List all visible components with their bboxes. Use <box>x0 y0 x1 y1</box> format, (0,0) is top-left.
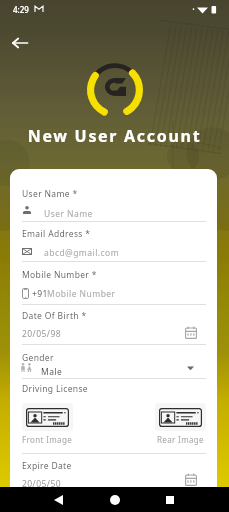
staticText: Date Of Birth * <box>22 310 87 322</box>
staticText: Front Image <box>22 434 73 445</box>
button[interactable]: Back <box>36 487 80 512</box>
staticText: Mobile Number <box>47 288 116 300</box>
staticText: Mobile Number * <box>22 269 97 281</box>
staticText: User Name * <box>22 188 78 200</box>
staticText: Gender <box>22 352 54 364</box>
staticText: User Name <box>44 208 93 220</box>
staticText: Email Address * <box>22 228 91 240</box>
staticText: 20/05/50 <box>22 478 62 490</box>
button[interactable]: Rear Image <box>155 403 206 445</box>
staticText: abcd@gmail.com <box>44 247 120 259</box>
button[interactable]: Front Image <box>22 403 73 445</box>
staticText: Male <box>41 366 63 378</box>
button[interactable]: Recent apps <box>148 487 192 512</box>
staticText: Driving License <box>22 383 89 395</box>
staticText: 4:29 <box>13 4 29 15</box>
staticText: Rear Image <box>157 434 204 445</box>
button[interactable]: Back <box>6 29 34 57</box>
staticText: New User Account <box>0 125 229 147</box>
staticText: Expire Date <box>22 460 72 472</box>
staticText: 20/05/98 <box>22 328 62 340</box>
staticText: +91 <box>32 288 48 300</box>
button[interactable]: Home <box>93 487 137 512</box>
